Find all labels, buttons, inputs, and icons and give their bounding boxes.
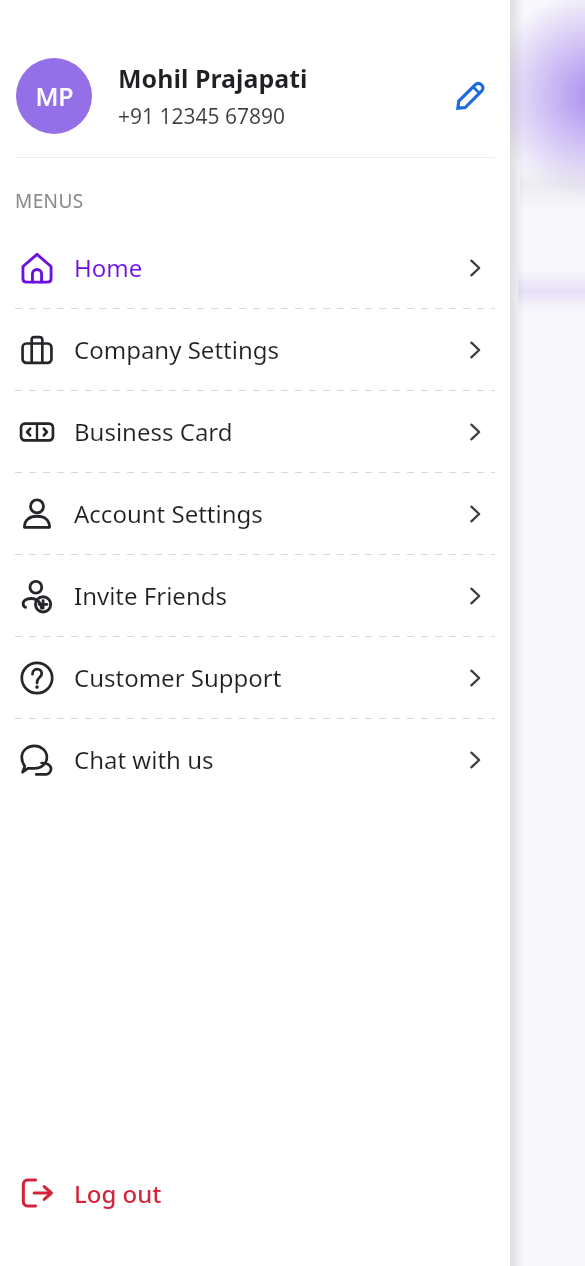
staticText: +91 12345 67890 (118, 102, 286, 131)
button[interactable]: Home (0, 227, 510, 308)
staticText: Company Settings (74, 333, 462, 366)
button[interactable]: Account Settings (0, 473, 510, 554)
staticText: Customer Support (74, 661, 462, 694)
staticText: Mohil Prajapati (118, 61, 308, 95)
staticText: MENUS (15, 188, 84, 214)
button[interactable]: Log out (0, 1158, 510, 1228)
button[interactable]: Invite Friends (0, 555, 510, 636)
button[interactable]: MP (0, 58, 510, 134)
button[interactable]: Customer Support (0, 637, 510, 718)
button[interactable]: Edit profile (444, 70, 496, 122)
staticText: Business Card (74, 415, 462, 448)
button[interactable]: Business Card (0, 391, 510, 472)
button[interactable]: Company Settings (0, 309, 510, 390)
staticText: MP (35, 79, 74, 113)
staticText: Log out (74, 1177, 162, 1210)
button[interactable]: Chat with us (0, 719, 510, 800)
staticText: Invite Friends (74, 579, 462, 612)
staticText: Chat with us (74, 743, 462, 776)
staticText: Home (74, 251, 462, 284)
staticText: Account Settings (74, 497, 462, 530)
